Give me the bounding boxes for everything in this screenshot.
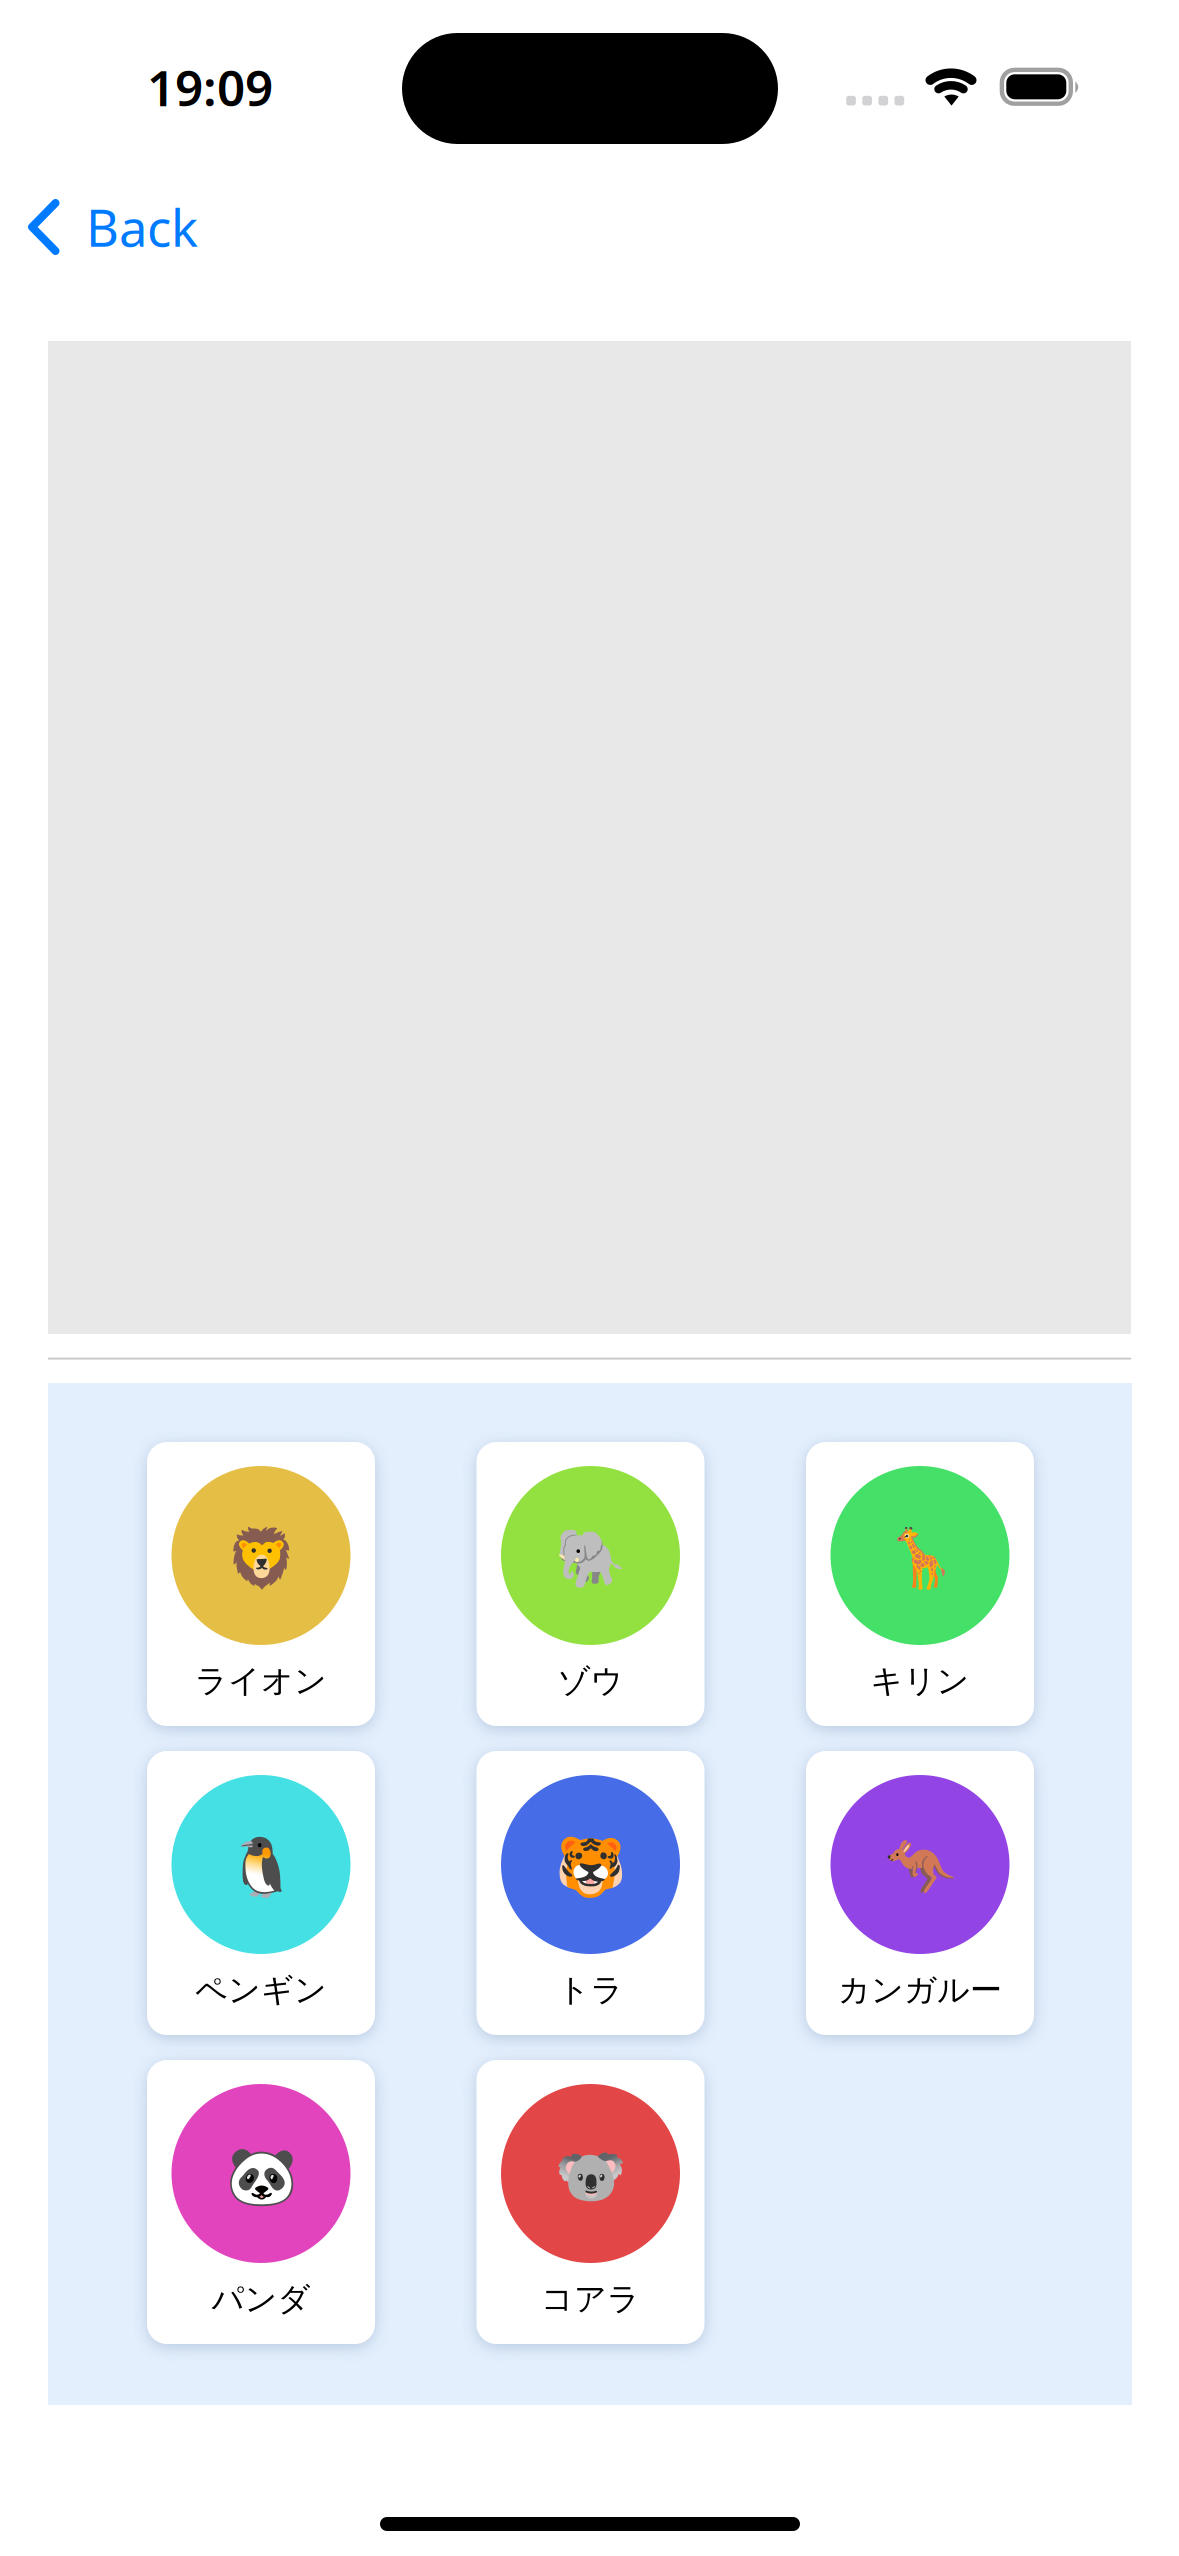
button[interactable]: 🐧 bbox=[147, 1751, 375, 2035]
staticText: 🐘 bbox=[555, 1526, 626, 1591]
staticText: コアラ bbox=[541, 2279, 640, 2319]
button[interactable]: 🐨 bbox=[476, 2060, 704, 2344]
button[interactable]: 🦁 bbox=[147, 1442, 375, 1726]
staticText: キリン bbox=[870, 1661, 969, 1701]
staticText: ペンギン bbox=[195, 1970, 327, 2010]
staticText: 🦘 bbox=[884, 1835, 955, 1900]
button[interactable]: 🐯 bbox=[476, 1751, 704, 2035]
button[interactable]: Back bbox=[0, 160, 420, 300]
staticText: ライオン bbox=[195, 1661, 327, 1701]
button[interactable]: 🦒 bbox=[806, 1442, 1034, 1726]
staticText: 🐯 bbox=[555, 1835, 626, 1900]
staticText: 🦁 bbox=[225, 1526, 296, 1591]
staticText: トラ bbox=[557, 1970, 623, 2010]
staticText: 🐧 bbox=[225, 1835, 296, 1900]
staticText: 🐨 bbox=[555, 2144, 626, 2209]
staticText: パンダ bbox=[211, 2279, 310, 2319]
staticText: 🐼 bbox=[225, 2144, 296, 2209]
staticText: カンガルー bbox=[838, 1970, 1002, 2010]
button[interactable]: 🐼 bbox=[147, 2060, 375, 2344]
button[interactable]: 🦘 bbox=[806, 1751, 1034, 2035]
staticText: ゾウ bbox=[557, 1661, 623, 1701]
staticText: 🦒 bbox=[884, 1526, 955, 1591]
staticText: 19:09 bbox=[147, 54, 273, 120]
button[interactable]: 🐘 bbox=[476, 1442, 704, 1726]
staticText: Back bbox=[86, 193, 198, 261]
